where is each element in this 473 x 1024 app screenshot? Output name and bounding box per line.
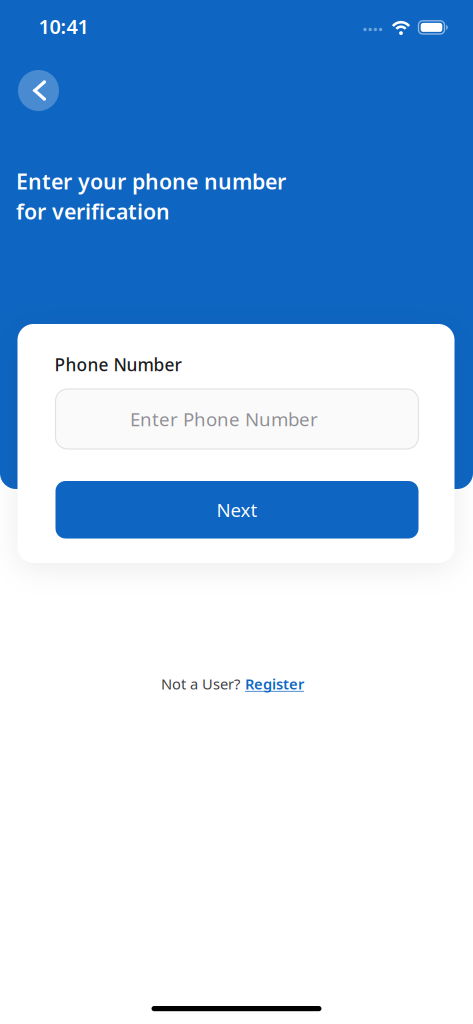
staticText: for verification	[16, 197, 170, 225]
button[interactable]: Register	[245, 674, 304, 693]
button[interactable]: Back	[18, 70, 59, 111]
staticText: Register	[245, 674, 304, 693]
staticText: Not a User?	[161, 674, 240, 693]
staticText: Next	[216, 497, 257, 522]
staticText: Phone Number	[54, 353, 181, 376]
staticText: Enter Phone Number	[130, 407, 318, 431]
staticText: 10:41	[38, 13, 88, 40]
button[interactable]: Phone Number entry field	[55, 389, 418, 449]
staticText: Enter your phone number	[16, 167, 286, 195]
button[interactable]: Next	[55, 481, 418, 538]
